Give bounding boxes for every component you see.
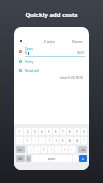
button[interactable]: ABC (16, 155, 25, 162)
button[interactable]: , (34, 146, 40, 153)
staticText: 1 (19, 130, 21, 134)
staticText: ⌫ (81, 148, 85, 151)
staticText: 0 (83, 130, 85, 134)
button[interactable]: " (81, 137, 87, 144)
button[interactable]: • (62, 146, 68, 153)
staticText: & (69, 139, 71, 143)
button[interactable]: ; (39, 137, 45, 144)
staticText: Done (72, 39, 83, 45)
staticText: : (35, 139, 36, 143)
staticText: 6 (55, 130, 57, 134)
staticText: ; (42, 139, 43, 143)
staticText: ) (56, 139, 57, 143)
staticText: ' (58, 148, 59, 152)
button[interactable]: Remove Taxes (17, 48, 24, 55)
button[interactable]: 2 (24, 128, 31, 135)
staticText: Ferry (25, 59, 34, 64)
button[interactable]: ? (41, 146, 47, 153)
staticText: Costs (44, 39, 55, 45)
staticText: ? (43, 148, 45, 152)
staticText: $ (62, 139, 64, 143)
button[interactable]: 0 (81, 128, 87, 135)
staticText: 5 (48, 130, 50, 134)
staticText: • (64, 148, 66, 152)
staticText: 0 (25, 50, 28, 55)
button[interactable]: . (28, 146, 33, 153)
staticText: 2 (27, 130, 29, 134)
staticText: Quickly add costs (25, 11, 78, 19)
button[interactable]: ( (46, 137, 52, 144)
button[interactable]: @ (74, 137, 80, 144)
staticText: ↵ (82, 157, 85, 160)
staticText: - (19, 139, 20, 143)
button[interactable]: ↵ (79, 155, 87, 162)
button[interactable]: ) (53, 137, 59, 144)
staticText: 3 (34, 130, 36, 134)
button[interactable]: 7 (60, 128, 66, 135)
staticText: / (27, 139, 28, 143)
staticText: 8 (69, 130, 71, 134)
staticText: . (75, 157, 76, 161)
staticText: NOK (77, 51, 84, 55)
button[interactable]: 8 (67, 128, 73, 135)
staticText: ( (49, 139, 50, 143)
staticText: Taxes (25, 47, 34, 51)
button[interactable]: ~ (69, 146, 75, 153)
button[interactable]: Road toll (14, 67, 89, 74)
button[interactable]: Menu (17, 37, 24, 44)
staticText: ABC (18, 157, 24, 161)
button[interactable]: 1 (16, 128, 23, 135)
button[interactable]: Done (72, 38, 83, 46)
button[interactable]: 9 (74, 128, 80, 135)
button[interactable]: & (67, 137, 73, 144)
button[interactable]: space (32, 155, 72, 162)
button[interactable]: 5 (46, 128, 52, 135)
staticText: , (37, 148, 38, 152)
staticText: 7 (62, 130, 64, 134)
staticText: Road toll (25, 68, 40, 73)
staticText: ☺ (27, 157, 30, 160)
staticText: 4 (41, 130, 43, 134)
staticText: ~ (71, 148, 73, 152)
button[interactable]: ⌫ (78, 146, 87, 153)
staticText: space (48, 157, 56, 161)
staticText: . (30, 148, 31, 152)
button[interactable]: ! (48, 146, 54, 153)
button[interactable]: 6 (53, 128, 59, 135)
staticText: #+= (18, 148, 23, 152)
button[interactable]: / (24, 137, 31, 144)
button[interactable]: ☺ (26, 155, 31, 162)
button[interactable]: #+= (16, 146, 25, 153)
button[interactable]: ' (55, 146, 61, 153)
staticText: total 0.00 NOK (60, 75, 84, 80)
button[interactable]: : (32, 137, 38, 144)
button[interactable]: 4 (39, 128, 45, 135)
staticText: 9 (76, 130, 78, 134)
button[interactable]: 3 (32, 128, 38, 135)
button[interactable]: Ferry (14, 58, 89, 65)
button[interactable]: - (16, 137, 23, 144)
staticText: " (83, 139, 85, 143)
button[interactable]: $ (60, 137, 66, 144)
staticText: @ (76, 139, 79, 143)
button[interactable]: . (73, 155, 78, 162)
staticText: ! (51, 148, 52, 152)
